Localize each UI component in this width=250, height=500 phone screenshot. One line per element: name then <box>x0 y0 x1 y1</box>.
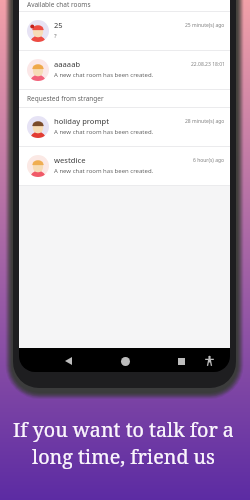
staticText: Requested from stranger <box>27 94 104 103</box>
staticText: A new chat room has been created. <box>54 71 154 79</box>
button[interactable]: holiday prompt <box>19 108 230 146</box>
staticText: If you want to talk for a long time, fri… <box>13 416 234 469</box>
staticText: 22.08.23 18:01 <box>191 61 225 68</box>
staticText: 25 <box>54 20 63 30</box>
staticText: ? <box>54 32 57 40</box>
staticText: aaaaab <box>54 59 81 69</box>
button[interactable]: Recent apps <box>170 350 192 372</box>
staticText: A new chat room has been created. <box>54 167 154 175</box>
staticText: 28 minute(s) ago <box>185 118 225 125</box>
staticText: 6 hour(s) ago <box>193 157 225 164</box>
staticText: Available chat rooms <box>27 0 91 9</box>
button[interactable]: 25 <box>19 12 230 50</box>
staticText: A new chat room has been created. <box>54 128 154 136</box>
staticText: 25 minute(s) ago <box>185 22 225 29</box>
button[interactable]: westdice <box>19 147 230 185</box>
button[interactable]: Accessibility <box>198 350 220 372</box>
button[interactable]: Home <box>114 350 136 372</box>
staticText: westdice <box>54 155 86 165</box>
staticText: holiday prompt <box>54 116 110 126</box>
button[interactable]: aaaaab <box>19 51 230 89</box>
button[interactable]: Back <box>57 350 79 372</box>
